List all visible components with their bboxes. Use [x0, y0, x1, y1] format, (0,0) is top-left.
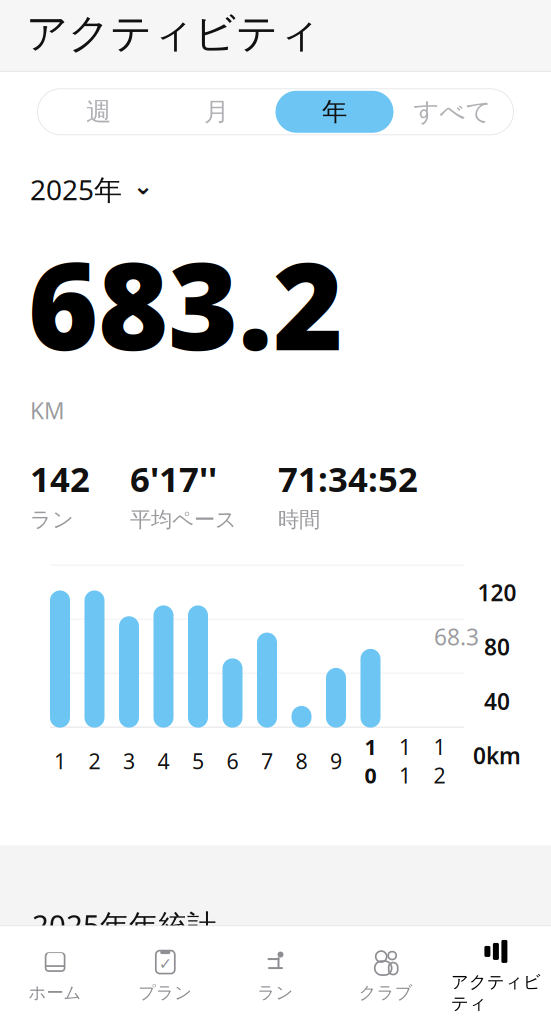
staticText: 8	[295, 747, 307, 775]
staticText: 40	[484, 686, 510, 716]
staticText: 5	[192, 747, 204, 775]
staticText: 月	[204, 96, 229, 127]
staticText: ラン	[257, 982, 293, 1003]
staticText: 6	[226, 747, 238, 775]
staticText: ホーム	[29, 982, 82, 1003]
button[interactable]: 年	[275, 91, 393, 133]
staticText: アクティビティ	[451, 971, 541, 1014]
button[interactable]: ホーム	[0, 937, 110, 1013]
staticText: 平均ペース	[130, 506, 237, 533]
staticText: 68.3	[434, 622, 479, 652]
staticText: 時間	[278, 506, 320, 533]
staticText: 683.2	[28, 224, 343, 383]
button[interactable]: クラブ	[331, 937, 441, 1013]
staticText: 9	[330, 747, 342, 775]
staticText: 120	[477, 577, 516, 607]
staticText: 0km	[473, 740, 521, 770]
staticText: すべて	[413, 96, 491, 127]
button[interactable]: プラン	[110, 937, 220, 1013]
staticText: 2	[88, 747, 100, 775]
button[interactable]: 週	[39, 91, 157, 133]
staticText: 3	[123, 747, 135, 775]
staticText: アクティビティ	[26, 8, 320, 59]
staticText: ⌄	[133, 172, 153, 199]
button[interactable]: すべて	[393, 91, 511, 133]
staticText: ラン	[30, 506, 74, 533]
staticText: 11	[399, 733, 411, 789]
staticText: 6'17''	[130, 455, 217, 501]
staticText: 12	[433, 733, 445, 789]
staticText: クラブ	[359, 982, 413, 1003]
staticText: 1	[54, 747, 66, 775]
button[interactable]: アクティビティ	[441, 926, 551, 1024]
button[interactable]: 月	[157, 91, 275, 133]
staticText: 71:34:52	[278, 455, 418, 501]
staticText: 2025年	[30, 171, 122, 208]
staticText: 2025年年統計	[32, 905, 216, 944]
staticText: プラン	[138, 982, 192, 1003]
button[interactable]: ラン	[220, 937, 331, 1013]
staticText: 4	[157, 747, 169, 775]
staticText: 週	[86, 96, 111, 127]
staticText: 年	[322, 96, 347, 127]
staticText: 7	[261, 747, 273, 775]
staticText: ✓	[159, 955, 172, 973]
staticText: 142	[30, 455, 90, 501]
staticText: 10	[364, 733, 376, 789]
staticText: 80	[484, 632, 510, 662]
staticText: KM	[30, 395, 65, 425]
button[interactable]: 2025年	[30, 171, 153, 208]
